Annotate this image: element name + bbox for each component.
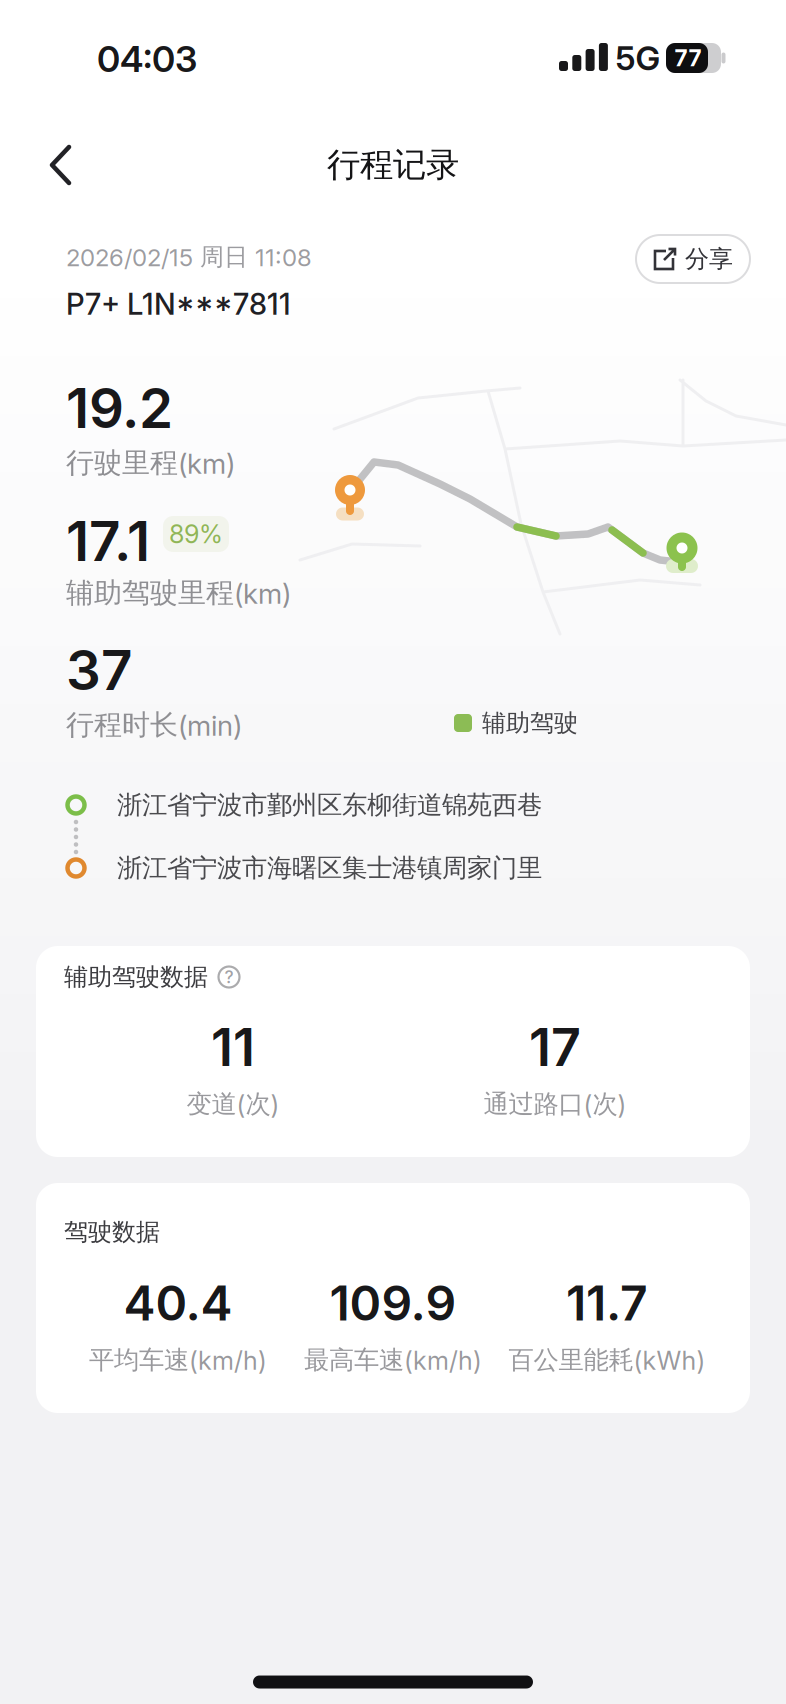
staticText: 辅助驾驶	[482, 708, 578, 738]
staticText: 19.2	[66, 376, 173, 440]
staticText: 百公里能耗(kWh)	[508, 1344, 705, 1375]
staticText: 109.9	[329, 1275, 456, 1331]
staticText: 变道(次)	[186, 1088, 279, 1119]
staticText: 2026/02/15 周日 11:08	[66, 242, 312, 272]
staticText: 行驶里程(km)	[66, 446, 235, 480]
staticText: 40.4	[123, 1275, 232, 1331]
staticText: P7+ L1N***7811	[66, 287, 291, 321]
staticText: 平均车速(km/h)	[89, 1344, 267, 1375]
staticText: 最高车速(km/h)	[304, 1344, 482, 1375]
staticText: 5G	[615, 38, 660, 78]
staticText: 17.1	[66, 509, 150, 573]
staticText: 行程时长(min)	[66, 708, 242, 742]
staticText: 浙江省宁波市海曙区集士港镇周家门里	[117, 852, 542, 883]
staticText: 浙江省宁波市鄞州区东柳街道锦苑西巷	[117, 789, 542, 820]
staticText: 17	[529, 1016, 581, 1078]
button[interactable]: 分享	[636, 235, 750, 283]
staticText: 11	[211, 1016, 255, 1078]
staticText: 77	[674, 45, 701, 71]
staticText: 驾驶数据	[64, 1217, 160, 1247]
staticText: 辅助驾驶里程(km)	[66, 576, 291, 610]
button[interactable]: 帮助	[214, 962, 244, 992]
staticText: 通过路口(次)	[483, 1088, 626, 1119]
staticText: 行程记录	[327, 144, 459, 185]
button[interactable]: 返回	[41, 138, 85, 192]
staticText: 37	[66, 638, 132, 702]
staticText: 辅助驾驶数据	[64, 962, 208, 992]
staticText: 04:03	[97, 38, 197, 80]
staticText: ?	[224, 967, 233, 987]
staticText: 11.7	[566, 1275, 648, 1331]
staticText: 分享	[685, 244, 733, 274]
staticText: 89%	[169, 519, 223, 549]
